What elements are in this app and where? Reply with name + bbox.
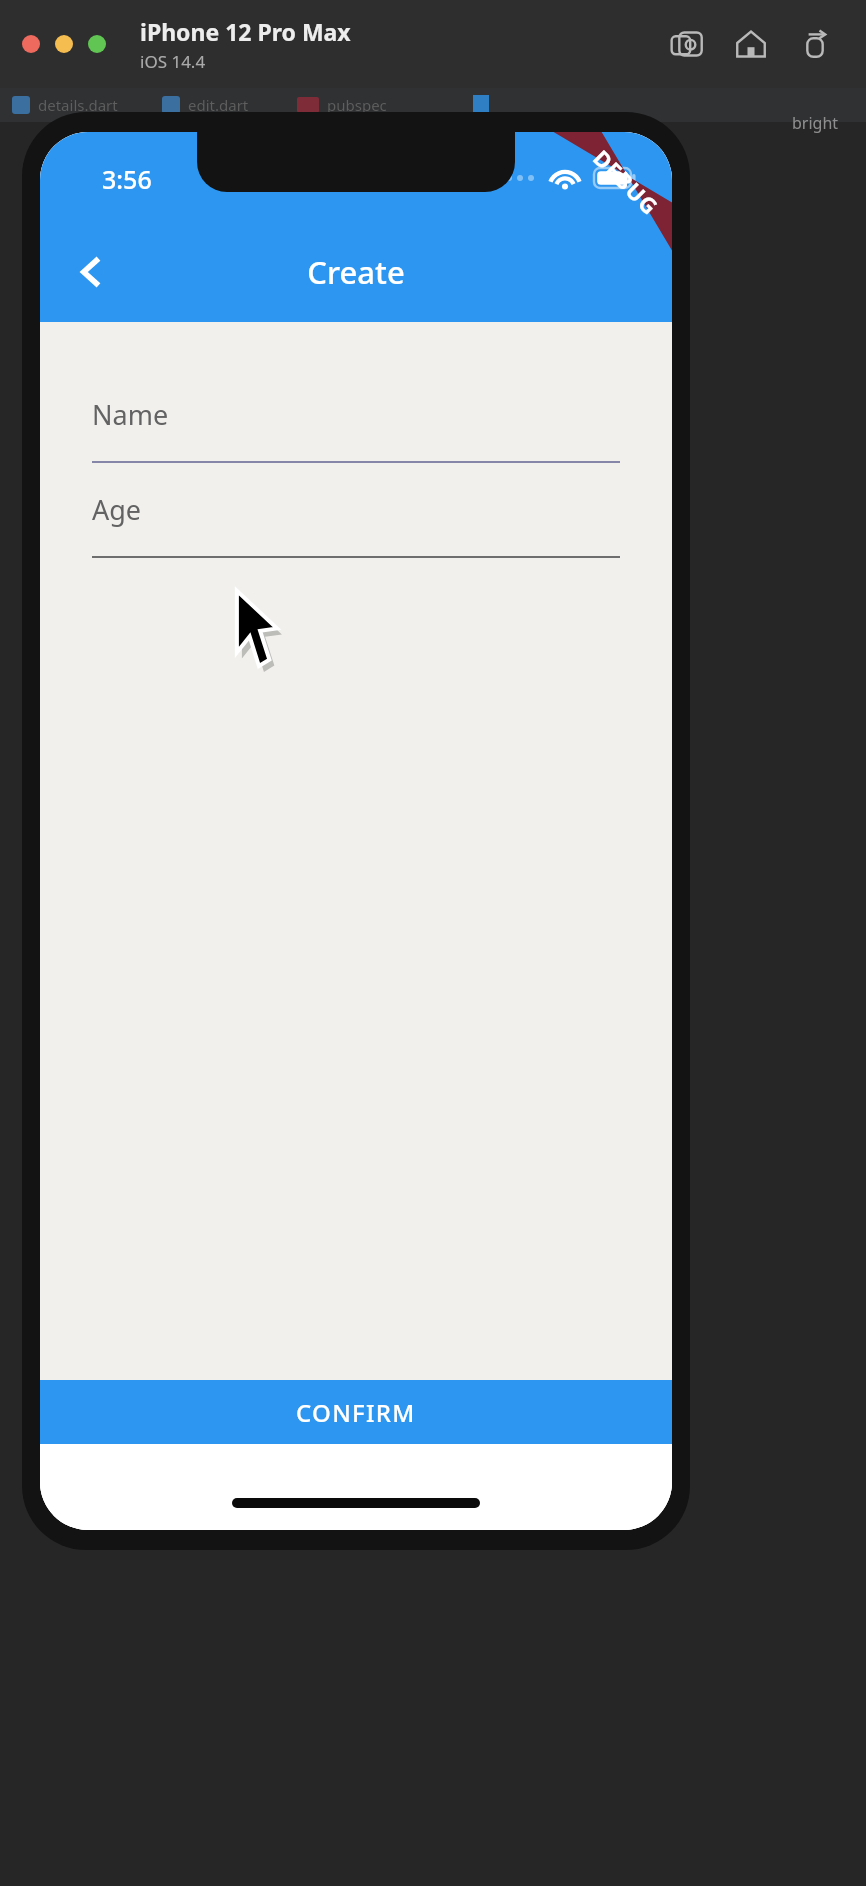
staticText: iOS 14.4 bbox=[140, 50, 206, 73]
button[interactable]: Home bbox=[728, 21, 774, 67]
staticText: Create bbox=[307, 251, 405, 293]
staticText: bright bbox=[792, 112, 839, 134]
button[interactable] bbox=[22, 35, 40, 53]
staticText: iPhone 12 Pro Max bbox=[140, 16, 351, 47]
button[interactable]: Screenshot bbox=[664, 21, 710, 67]
staticText: CONFIRM bbox=[296, 1396, 416, 1429]
button[interactable]: Back bbox=[60, 240, 124, 304]
staticText: Age bbox=[92, 491, 142, 528]
button[interactable]: CONFIRM bbox=[40, 1380, 672, 1444]
staticText: 3:56 bbox=[102, 162, 152, 196]
staticText: pubspec bbox=[327, 95, 387, 115]
button[interactable]: Rotate bbox=[792, 21, 838, 67]
staticText: details.dart bbox=[38, 95, 118, 115]
staticText: DEBUG bbox=[587, 143, 666, 221]
staticText: edit.dart bbox=[188, 95, 249, 115]
button[interactable] bbox=[55, 35, 73, 53]
staticText: Name bbox=[92, 396, 169, 433]
button[interactable] bbox=[88, 35, 106, 53]
